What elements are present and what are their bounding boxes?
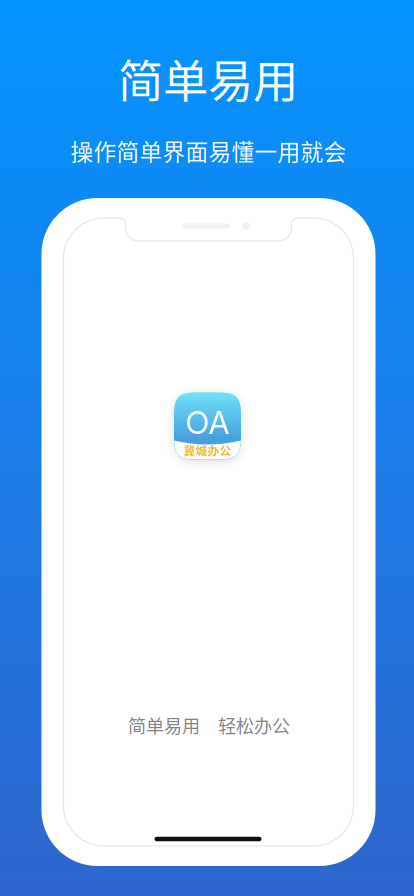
button[interactable]: 冀城办公: [174, 392, 241, 459]
staticText: 操作简单界面易懂一用就会: [70, 134, 346, 167]
staticText: 简单易用: [118, 46, 298, 111]
staticText: 简单易用 轻松办公: [128, 712, 290, 738]
staticText: OA: [185, 403, 229, 441]
staticText: 冀城办公: [183, 442, 231, 458]
